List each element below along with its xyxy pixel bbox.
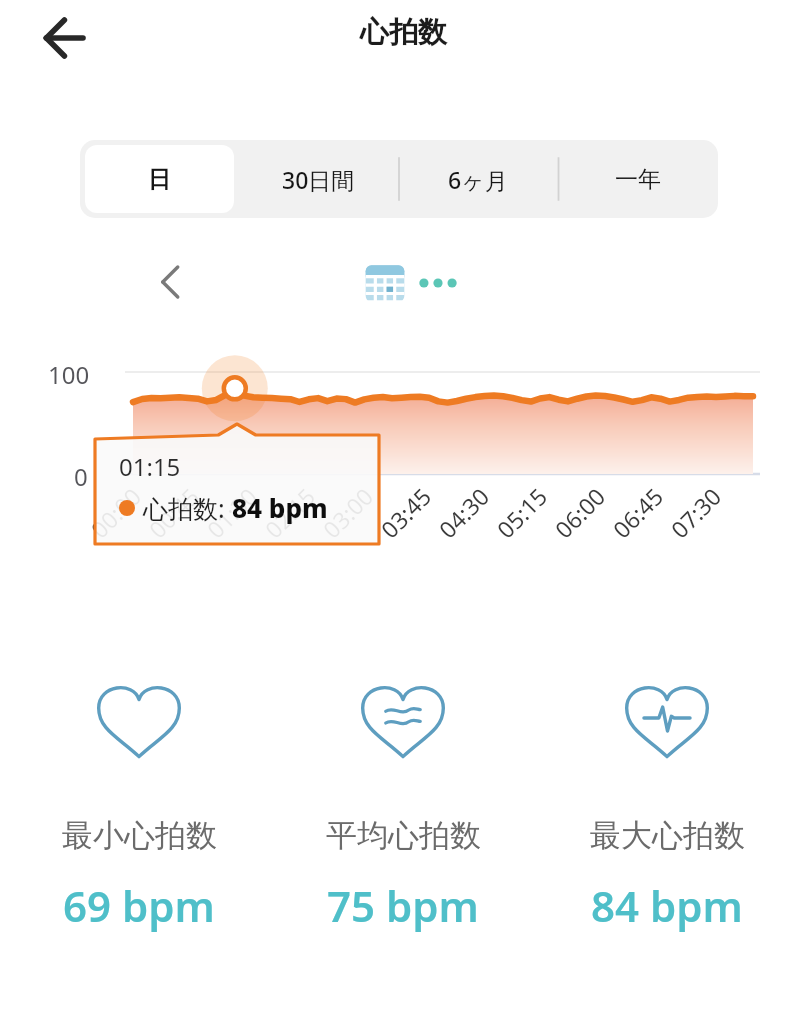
staticText: 心拍数: xyxy=(143,491,232,525)
button[interactable]: Back xyxy=(32,8,92,68)
staticText: 07:30 xyxy=(664,481,727,544)
button[interactable]: 最大心拍数 xyxy=(542,676,792,934)
button[interactable]: Previous xyxy=(148,258,196,306)
staticText: 06:00 xyxy=(548,481,611,544)
button[interactable]: 平均心拍数 xyxy=(278,676,528,934)
staticText: 05:15 xyxy=(490,481,553,544)
staticText: 04:30 xyxy=(432,481,495,544)
staticText: 最小心拍数 xyxy=(62,816,217,855)
button[interactable]: 最小心拍数 xyxy=(14,676,264,934)
staticText: 03:00 xyxy=(316,481,379,544)
staticText: 03:45 xyxy=(374,481,437,544)
button[interactable]: 一年 xyxy=(563,145,713,213)
staticText: 0 xyxy=(74,460,88,493)
staticText: 69 bpm xyxy=(63,877,215,934)
button[interactable]: More options xyxy=(416,266,460,300)
staticText: 日 xyxy=(148,165,171,194)
staticText: 00:45 xyxy=(142,481,205,544)
staticText: 01:30 xyxy=(200,481,263,544)
staticText: 84 bpm xyxy=(232,490,328,525)
staticText: 最大心拍数 xyxy=(590,816,745,855)
staticText: 75 bpm xyxy=(327,877,479,934)
button[interactable]: 30日間 xyxy=(244,145,393,213)
staticText: 00:00 xyxy=(84,481,147,544)
staticText: 平均心拍数 xyxy=(326,816,481,855)
staticText: 30日間 xyxy=(282,164,355,195)
staticText: 02:15 xyxy=(258,481,321,544)
staticText: 01:15 xyxy=(119,450,181,483)
staticText: 心拍数 xyxy=(360,14,447,51)
staticText: 06:45 xyxy=(606,481,669,544)
staticText: 6ヶ月 xyxy=(448,164,508,195)
staticText: 84 bpm xyxy=(591,877,743,934)
button[interactable]: 6ヶ月 xyxy=(403,145,553,213)
staticText: 100 xyxy=(48,358,90,391)
button[interactable]: Calendar view xyxy=(364,262,406,304)
button[interactable]: 日 xyxy=(85,145,234,213)
staticText: 一年 xyxy=(615,165,661,194)
